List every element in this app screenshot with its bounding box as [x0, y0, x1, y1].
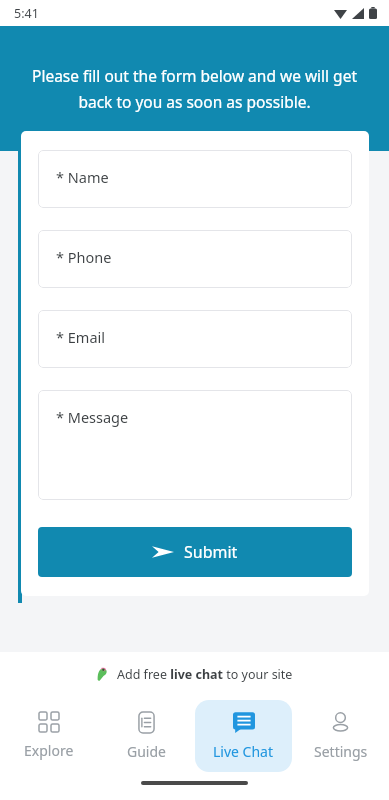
- button[interactable]: Settings: [292, 700, 389, 772]
- button[interactable]: * Phone: [38, 230, 352, 288]
- staticText: Submit: [184, 541, 238, 563]
- staticText: 5:41: [14, 5, 39, 22]
- staticText: * Name: [56, 167, 109, 187]
- staticText: Settings: [314, 742, 368, 761]
- button[interactable]: * Email: [38, 310, 352, 368]
- button[interactable]: Add free live chat to your site: [0, 662, 389, 686]
- button[interactable]: Explore: [0, 700, 98, 772]
- staticText: Explore: [24, 741, 74, 760]
- button[interactable]: Live Chat: [195, 700, 292, 772]
- staticText: * Message: [56, 407, 129, 427]
- staticText: Guide: [127, 742, 166, 761]
- button[interactable]: * Name: [38, 150, 352, 208]
- staticText: * Phone: [56, 247, 112, 267]
- staticText: * Email: [56, 327, 105, 347]
- staticText: Add free live chat to your site: [117, 666, 293, 683]
- button[interactable]: Guide: [98, 700, 195, 772]
- button[interactable]: Submit: [38, 527, 352, 577]
- button[interactable]: * Message: [38, 390, 352, 500]
- staticText: Live Chat: [213, 742, 274, 761]
- staticText: Please fill out the form below and we wi…: [20, 65, 369, 113]
